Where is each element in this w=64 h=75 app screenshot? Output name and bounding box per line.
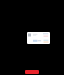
button[interactable]	[27, 32, 50, 44]
button[interactable]: Primary action	[25, 70, 39, 74]
